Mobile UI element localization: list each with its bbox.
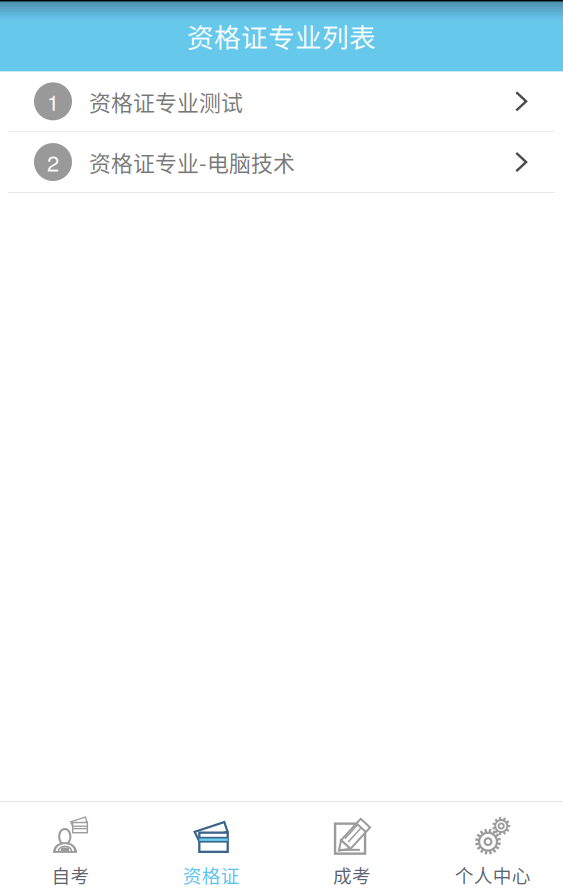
button[interactable]: 1	[0, 72, 563, 132]
button[interactable]: 2	[0, 132, 563, 193]
staticText: 资格证	[183, 861, 240, 888]
button[interactable]: 个人中心	[422, 802, 563, 888]
button[interactable]: 资格证	[141, 802, 282, 888]
staticText: 1	[47, 86, 59, 117]
staticText: 资格证专业列表	[187, 16, 376, 55]
button[interactable]: 成考	[281, 802, 422, 888]
button[interactable]: 自考	[0, 802, 141, 888]
staticText: 2	[47, 146, 59, 178]
staticText: 自考	[51, 861, 89, 888]
staticText: 资格证专业-电脑技术	[89, 146, 295, 178]
staticText: 成考	[333, 861, 371, 888]
staticText: 资格证专业测试	[89, 85, 243, 117]
staticText: 个人中心	[455, 861, 531, 888]
